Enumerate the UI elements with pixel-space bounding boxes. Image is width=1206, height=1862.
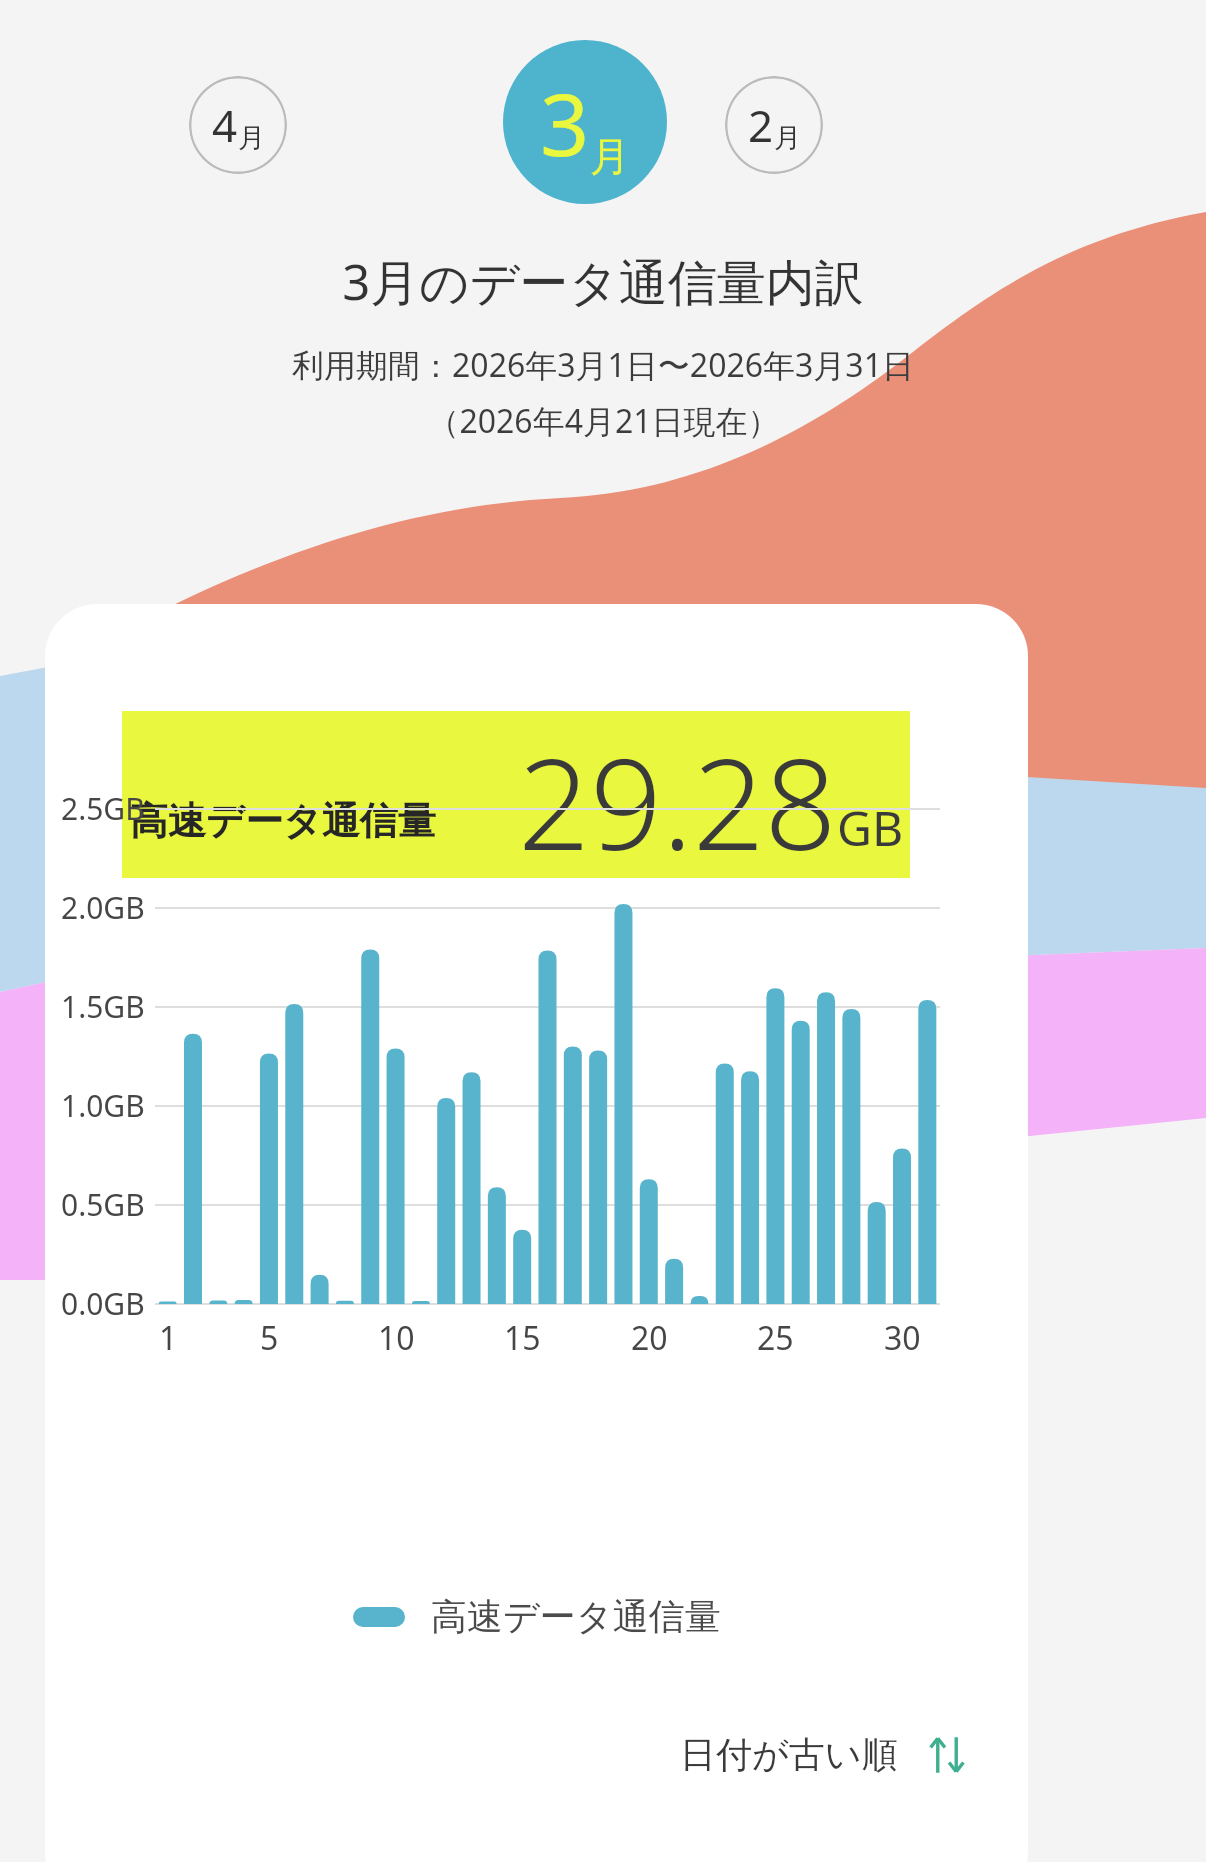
staticText: 20 <box>631 1316 668 1360</box>
staticText: 月 <box>590 131 630 181</box>
staticText: 日付が古い順 <box>680 1732 898 1777</box>
button[interactable]: 3 <box>503 40 667 204</box>
staticText: 0.5GB <box>61 1184 145 1225</box>
staticText: 3月のデータ通信量内訳 <box>342 248 864 315</box>
staticText: 高速データ通信量 <box>431 1594 721 1639</box>
button[interactable]: 4 <box>189 76 287 174</box>
staticText: 30 <box>884 1316 921 1360</box>
staticText: 29.28 <box>518 715 837 882</box>
staticText: 利用期間：2026年3月1日〜2026年3月31日 <box>292 343 914 387</box>
staticText: 2 <box>748 95 774 155</box>
staticText: 月 <box>774 121 801 155</box>
staticText: 0.0GB <box>61 1283 145 1324</box>
staticText: 高速データ通信量 <box>130 797 436 845</box>
staticText: 3 <box>540 64 590 181</box>
staticText: （2026年4月21日現在） <box>427 399 780 443</box>
button[interactable]: 日付が古い順 <box>672 1722 976 1787</box>
staticText: 25 <box>757 1316 794 1360</box>
staticText: 2.5GB <box>61 788 145 829</box>
staticText: 1 <box>159 1316 178 1360</box>
staticText: 1.0GB <box>61 1085 145 1126</box>
staticText: 4 <box>212 95 238 155</box>
staticText: GB <box>837 795 904 860</box>
staticText: 5 <box>260 1316 279 1360</box>
staticText: 2.0GB <box>61 887 145 928</box>
staticText: 15 <box>504 1316 541 1360</box>
other: Change sort order <box>926 1734 968 1776</box>
staticText: 10 <box>378 1316 415 1360</box>
staticText: 1.5GB <box>61 986 145 1027</box>
staticText: 月 <box>238 121 265 155</box>
button[interactable]: 2 <box>725 76 823 174</box>
